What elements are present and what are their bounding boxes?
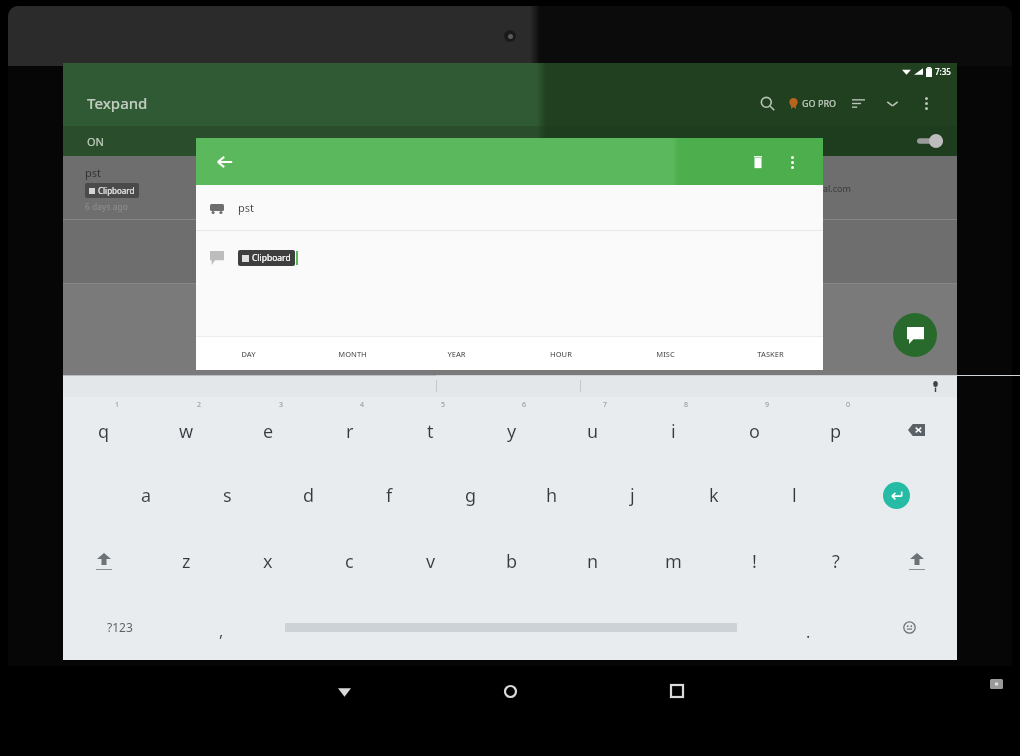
button[interactable]: [63, 220, 957, 283]
button[interactable]: Sort: [841, 86, 875, 120]
staticText: 0: [846, 400, 851, 410]
button[interactable]: Shift: [63, 528, 145, 594]
button[interactable]: 2: [145, 397, 227, 462]
staticText: ON: [87, 134, 104, 149]
staticText: j: [630, 483, 635, 508]
staticText: x: [263, 549, 273, 574]
button[interactable]: Clipboard: [196, 231, 823, 284]
button[interactable]: GO PRO: [784, 97, 841, 109]
staticText: v: [426, 549, 436, 574]
staticText: al.com: [823, 182, 851, 194]
staticText: h: [546, 483, 558, 508]
staticText: ?123: [107, 619, 133, 635]
staticText: Clipboard: [98, 185, 135, 196]
staticText: 3: [279, 400, 284, 410]
button[interactable]: ,: [177, 594, 265, 660]
button[interactable]: f: [349, 462, 430, 528]
button[interactable]: Emoji: [861, 594, 957, 660]
button[interactable]: Backspace: [876, 397, 957, 462]
button[interactable]: pst: [196, 185, 823, 230]
button[interactable]: MONTH: [300, 337, 404, 370]
staticText: ?: [832, 549, 840, 574]
staticText: r: [346, 419, 354, 444]
button[interactable]: g: [430, 462, 511, 528]
staticText: d: [303, 483, 315, 508]
button[interactable]: Search: [750, 86, 784, 120]
button[interactable]: a: [105, 462, 187, 528]
staticText: MONTH: [338, 349, 367, 359]
staticText: t: [427, 419, 434, 444]
button[interactable]: YEAR: [404, 337, 508, 370]
staticText: TASKER: [757, 349, 784, 359]
button[interactable]: v: [390, 528, 471, 594]
button[interactable]: Shift: [876, 528, 957, 594]
button[interactable]: pst: [63, 156, 957, 219]
staticText: a: [141, 483, 152, 508]
staticText: GO PRO: [802, 97, 837, 109]
staticText: z: [182, 549, 191, 574]
button[interactable]: 7: [552, 397, 633, 462]
button[interactable]: 8: [633, 397, 714, 462]
button[interactable]: h: [511, 462, 592, 528]
button[interactable]: .: [756, 594, 861, 660]
staticText: 6 days ago: [85, 201, 128, 213]
button[interactable]: j: [592, 462, 673, 528]
button[interactable]: Recents: [660, 674, 694, 708]
button[interactable]: HOUR: [508, 337, 613, 370]
staticText: pst: [238, 200, 255, 215]
button[interactable]: s: [187, 462, 268, 528]
staticText: u: [587, 419, 599, 444]
button[interactable]: Home: [493, 674, 527, 708]
button[interactable]: 1: [63, 397, 145, 462]
staticText: Clipboard: [252, 252, 291, 264]
button[interactable]: 6: [471, 397, 552, 462]
button[interactable]: 0: [795, 397, 876, 462]
button[interactable]: Expand: [875, 86, 909, 120]
button[interactable]: 4: [309, 397, 390, 462]
button[interactable]: TASKER: [718, 337, 823, 370]
button[interactable]: Voice input: [925, 376, 945, 396]
button[interactable]: Space: [265, 594, 756, 660]
staticText: n: [587, 549, 599, 574]
button[interactable]: ?123: [63, 594, 177, 660]
button[interactable]: More options: [775, 145, 809, 179]
button[interactable]: m: [633, 528, 714, 594]
staticText: 7:35: [935, 66, 951, 77]
staticText: s: [223, 483, 232, 508]
button[interactable]: Back: [208, 145, 242, 179]
staticText: q: [98, 419, 110, 444]
button[interactable]: b: [471, 528, 552, 594]
staticText: g: [465, 483, 477, 508]
button[interactable]: l: [754, 462, 835, 528]
button[interactable]: 9: [714, 397, 795, 462]
staticText: 1: [115, 400, 120, 410]
button[interactable]: ON: [63, 126, 957, 156]
staticText: 2: [197, 400, 202, 410]
button[interactable]: n: [552, 528, 633, 594]
button[interactable]: MISC: [613, 337, 718, 370]
button[interactable]: c: [309, 528, 390, 594]
button[interactable]: d: [268, 462, 349, 528]
staticText: YEAR: [447, 349, 466, 359]
staticText: e: [263, 419, 274, 444]
button[interactable]: More options: [909, 86, 943, 120]
button[interactable]: 3: [227, 397, 309, 462]
staticText: MISC: [656, 349, 675, 359]
button[interactable]: z: [145, 528, 227, 594]
button[interactable]: Back: [327, 674, 361, 708]
staticText: c: [345, 549, 354, 574]
button[interactable]: Switch keyboard: [986, 674, 1006, 694]
button[interactable]: Add phrase: [893, 313, 937, 357]
button[interactable]: DAY: [196, 337, 300, 370]
button[interactable]: ?: [795, 528, 876, 594]
button[interactable]: x: [227, 528, 309, 594]
staticText: 4: [360, 400, 365, 410]
button[interactable]: 5: [390, 397, 471, 462]
staticText: !: [752, 549, 757, 574]
button[interactable]: Delete: [741, 145, 775, 179]
button[interactable]: !: [714, 528, 795, 594]
staticText: HOUR: [550, 349, 572, 359]
staticText: b: [506, 549, 518, 574]
button[interactable]: k: [673, 462, 754, 528]
button[interactable]: Enter: [835, 462, 957, 528]
